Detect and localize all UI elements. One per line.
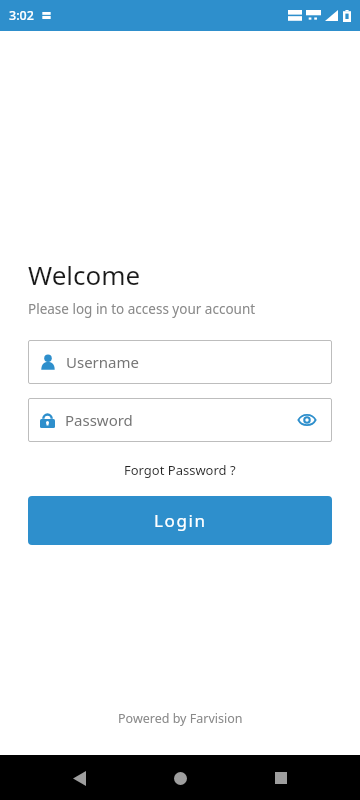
button[interactable]: Show password (294, 407, 320, 433)
staticText: 3:02 (9, 7, 34, 24)
button[interactable]: Password (28, 398, 332, 442)
staticText: Forgot Password ? (124, 461, 236, 479)
staticText: Powered by Farvision (118, 710, 243, 727)
staticText: Please log in to access your account (28, 300, 256, 318)
button[interactable]: Home (158, 756, 202, 800)
button[interactable]: Back (57, 756, 101, 800)
button[interactable]: Recents (259, 756, 303, 800)
button[interactable]: Username (28, 340, 332, 384)
staticText: Password (65, 410, 133, 430)
staticText: Username (66, 352, 139, 372)
staticText: Welcome (28, 257, 141, 292)
button[interactable]: Forgot Password ? (116, 457, 244, 483)
button[interactable]: Login (28, 496, 332, 545)
staticText: Login (154, 509, 207, 532)
